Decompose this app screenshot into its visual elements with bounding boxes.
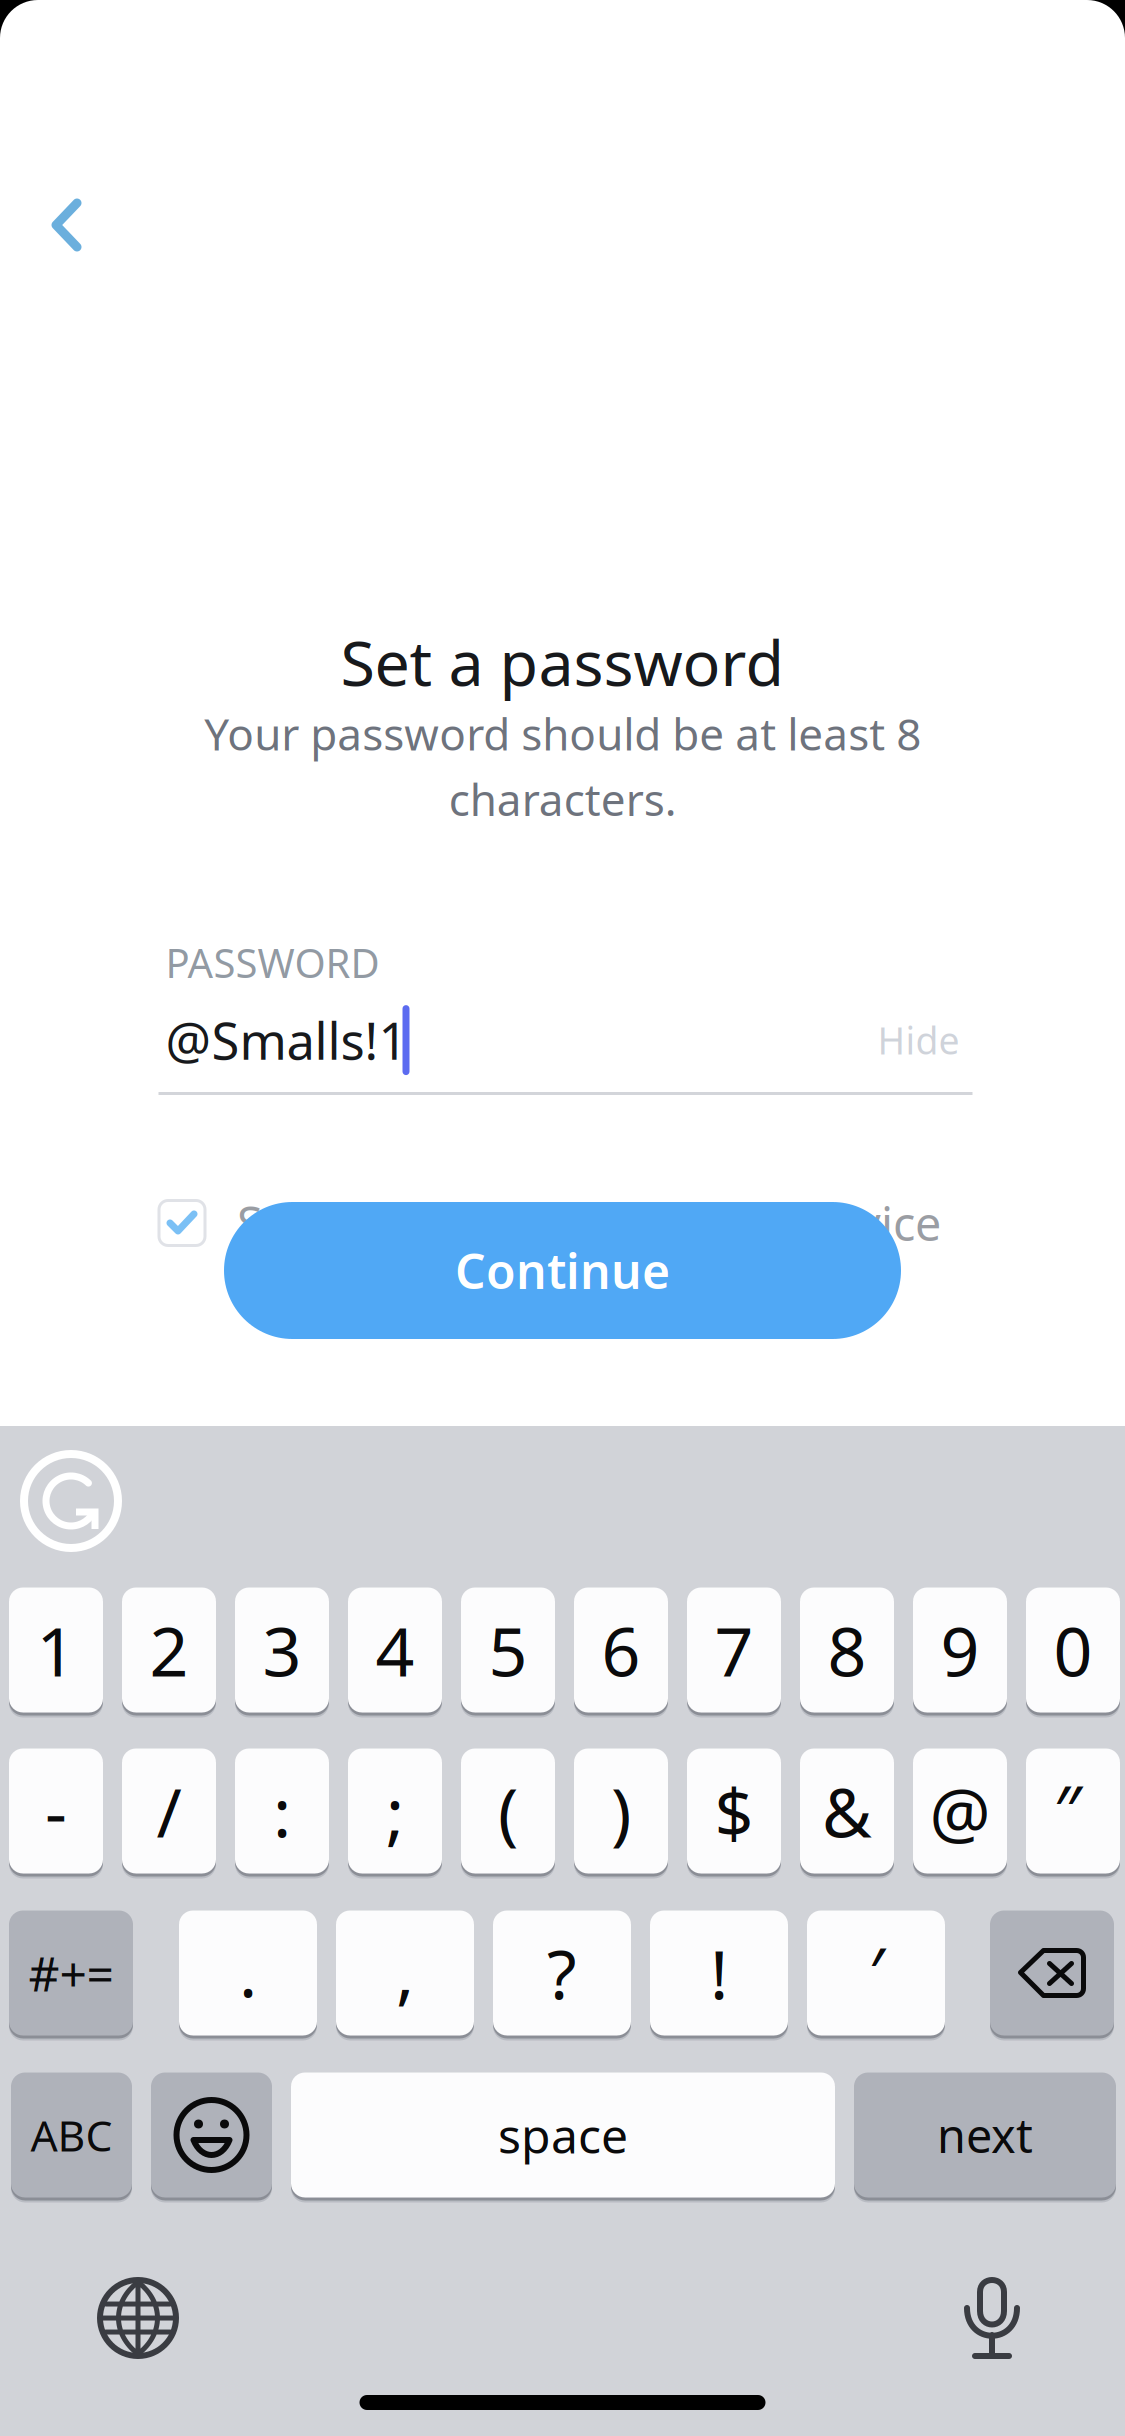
button[interactable]: 0 — [1026, 1585, 1120, 1715]
button[interactable]: : — [235, 1746, 329, 1876]
staticText: 8 — [827, 1605, 866, 1695]
staticText: ? — [547, 1928, 577, 2018]
staticText: & — [822, 1766, 872, 1856]
button[interactable]: Emoji — [151, 2070, 272, 2200]
staticText: 6 — [601, 1605, 640, 1695]
button[interactable]: - — [9, 1746, 103, 1876]
button[interactable]: @ — [913, 1746, 1007, 1876]
button[interactable]: 8 — [800, 1585, 894, 1715]
staticText: 3 — [262, 1605, 301, 1695]
button[interactable]: Delete — [990, 1908, 1114, 2038]
button[interactable]: 6 — [574, 1585, 668, 1715]
staticText: @ — [929, 1766, 990, 1856]
staticText: 2 — [149, 1605, 188, 1695]
staticText: , — [396, 1926, 414, 2016]
button[interactable]: 4 — [348, 1585, 442, 1715]
staticText: 7 — [714, 1605, 753, 1695]
button[interactable]: ( — [461, 1746, 555, 1876]
staticText: 0 — [1053, 1605, 1092, 1695]
button[interactable]: , — [336, 1908, 474, 2038]
button[interactable]: 3 — [235, 1585, 329, 1715]
button[interactable]: 5 — [461, 1585, 555, 1715]
button[interactable]: ? — [493, 1908, 631, 2038]
button[interactable]: 9 — [913, 1585, 1007, 1715]
button[interactable]: 1 — [9, 1585, 103, 1715]
button[interactable]: next — [854, 2070, 1116, 2200]
staticText: next — [937, 2104, 1033, 2166]
staticText: ′ — [869, 1925, 885, 2015]
button[interactable]: ! — [650, 1908, 788, 2038]
staticText: Set a password — [340, 620, 784, 703]
button[interactable]: 7 — [687, 1585, 781, 1715]
staticText: 4 — [375, 1605, 414, 1695]
button[interactable]: & — [800, 1746, 894, 1876]
staticText: ″ — [1054, 1763, 1082, 1853]
staticText: - — [45, 1766, 67, 1856]
staticText: : — [273, 1766, 291, 1856]
button[interactable]: Hide — [877, 1015, 959, 1065]
staticText: @Smalls!1 — [165, 1006, 407, 1074]
button[interactable]: ″ — [1026, 1746, 1120, 1876]
button[interactable]: Next keyboard — [100, 2280, 176, 2356]
button[interactable]: Grammarly — [18, 1448, 124, 1554]
staticText: Hide — [877, 1015, 959, 1065]
staticText: . — [239, 1926, 257, 2016]
button[interactable]: ABC — [11, 2070, 132, 2200]
button[interactable]: ) — [574, 1746, 668, 1876]
staticText: ! — [710, 1928, 728, 2018]
staticText: $ — [714, 1766, 753, 1856]
staticText: space — [498, 2103, 628, 2167]
button[interactable]: space — [291, 2070, 835, 2200]
button[interactable]: ; — [348, 1746, 442, 1876]
button[interactable]: Continue — [224, 1202, 901, 1339]
staticText: #+= — [28, 1941, 113, 2005]
staticText: Save my password to this device — [237, 1192, 941, 1254]
button[interactable]: . — [179, 1908, 317, 2038]
staticText: PASSWORD — [165, 936, 379, 989]
staticText: ( — [498, 1766, 518, 1856]
staticText: ABC — [30, 2107, 112, 2163]
button[interactable]: ′ — [807, 1908, 945, 2038]
button[interactable]: 2 — [122, 1585, 216, 1715]
staticText: ; — [386, 1766, 404, 1856]
staticText: 9 — [940, 1605, 979, 1695]
staticText: Continue — [455, 1239, 670, 1302]
staticText: 5 — [488, 1605, 527, 1695]
button[interactable]: Save my password to this device — [159, 1200, 205, 1245]
staticText: Your password should be at least 8 chara… — [204, 704, 921, 828]
button[interactable]: #+= — [9, 1908, 133, 2038]
button[interactable]: / — [122, 1746, 216, 1876]
staticText: 1 — [36, 1605, 75, 1695]
button[interactable]: $ — [687, 1746, 781, 1876]
button[interactable]: Dictate — [963, 2275, 1021, 2361]
button[interactable]: Back — [14, 170, 124, 280]
staticText: / — [156, 1766, 181, 1856]
staticText: ) — [611, 1766, 631, 1856]
